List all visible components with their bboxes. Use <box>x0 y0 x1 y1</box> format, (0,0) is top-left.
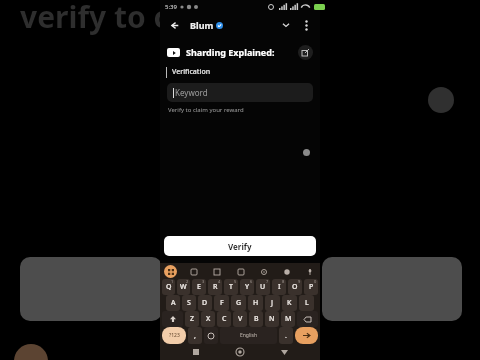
button[interactable]: Sharding Explained: <box>167 41 313 63</box>
staticText: 6 <box>250 279 253 284</box>
staticText: S <box>187 298 191 308</box>
button[interactable]: Y <box>240 279 254 295</box>
button[interactable]: Expand <box>278 17 294 33</box>
staticText: K <box>287 298 292 308</box>
staticText: J <box>271 298 274 308</box>
button[interactable]: X <box>201 311 215 327</box>
button[interactable]: S <box>182 295 196 311</box>
button[interactable]: Q <box>162 279 175 295</box>
button[interactable]: Z <box>185 311 199 327</box>
button[interactable]: Keyboard menu <box>164 265 177 278</box>
staticText: P <box>309 282 314 292</box>
button[interactable]: Home <box>232 344 248 360</box>
staticText: G <box>236 298 242 308</box>
staticText: X <box>206 314 211 324</box>
staticText: L <box>305 298 309 308</box>
staticText: R <box>213 282 218 292</box>
button[interactable]: O <box>288 279 302 295</box>
button[interactable]: Enter <box>295 327 318 344</box>
staticText: Blum <box>190 19 214 31</box>
button[interactable]: Stickers <box>234 265 247 278</box>
staticText: . <box>285 331 287 341</box>
button[interactable]: E <box>192 279 206 295</box>
staticText: , <box>194 331 196 341</box>
staticText: I <box>278 282 281 292</box>
button[interactable]: Verify <box>164 236 316 256</box>
staticText: 4 <box>218 279 221 284</box>
button[interactable]: Shift <box>162 311 183 327</box>
button[interactable]: Backspace <box>297 311 318 327</box>
button[interactable]: ?123 <box>162 327 186 344</box>
button[interactable]: Settings <box>257 265 270 278</box>
button[interactable]: , <box>188 327 202 344</box>
staticText: Q <box>166 282 172 292</box>
button[interactable]: T <box>224 279 238 295</box>
staticText: Z <box>190 314 195 324</box>
staticText: B <box>254 314 259 324</box>
staticText: verify to claim you <box>20 0 298 37</box>
button[interactable]: Theme <box>280 265 293 278</box>
button[interactable]: Back <box>166 17 182 33</box>
button[interactable]: W <box>177 279 190 295</box>
button[interactable]: Voice input <box>303 265 316 278</box>
button[interactable]: V <box>233 311 247 327</box>
button[interactable]: F <box>214 295 229 311</box>
button[interactable]: Keyword <box>167 83 313 102</box>
button[interactable]: J <box>265 295 280 311</box>
button[interactable]: Back <box>276 344 292 360</box>
staticText: Keyword <box>175 87 208 98</box>
staticText: 9 <box>298 279 301 284</box>
staticText: Sharding Explained: <box>186 46 275 58</box>
button[interactable]: English <box>220 327 277 344</box>
staticText: 7 <box>266 279 269 284</box>
staticText: H <box>253 298 259 308</box>
staticText: W <box>180 282 187 292</box>
staticText: 3 <box>202 279 205 284</box>
button[interactable]: D <box>198 295 212 311</box>
staticText: T <box>229 282 233 292</box>
staticText: C <box>222 314 227 324</box>
staticText: 1 <box>171 279 174 284</box>
staticText: English <box>240 332 258 339</box>
button[interactable]: Open link <box>298 45 313 60</box>
staticText: Verification <box>172 67 211 77</box>
button[interactable]: A <box>166 295 180 311</box>
button[interactable]: H <box>248 295 263 311</box>
button[interactable]: L <box>299 295 314 311</box>
staticText: E <box>197 282 201 292</box>
button[interactable]: K <box>282 295 297 311</box>
button[interactable]: Recents <box>188 344 204 360</box>
button[interactable]: I <box>272 279 286 295</box>
staticText: ?123 <box>169 332 180 339</box>
button[interactable]: Emoji <box>204 327 218 344</box>
staticText: Verify <box>228 241 252 252</box>
staticText: M <box>285 314 292 324</box>
staticText: 0 <box>314 279 317 284</box>
button[interactable]: P <box>304 279 318 295</box>
staticText: 2 <box>186 279 189 284</box>
button[interactable]: More options <box>298 17 314 33</box>
staticText: U <box>260 282 266 292</box>
button[interactable]: Clipboard <box>187 265 200 278</box>
staticText: D <box>202 298 208 308</box>
button[interactable]: . <box>279 327 293 344</box>
button[interactable]: R <box>208 279 222 295</box>
staticText: V <box>238 314 243 324</box>
staticText: F <box>220 298 224 308</box>
button[interactable]: N <box>265 311 279 327</box>
staticText: A <box>171 298 176 308</box>
staticText: Y <box>245 282 250 292</box>
button[interactable]: G <box>231 295 246 311</box>
button[interactable]: U <box>256 279 270 295</box>
staticText: Verify to claim your reward <box>168 106 244 114</box>
staticText: 8 <box>282 279 285 284</box>
staticText: O <box>292 282 298 292</box>
button[interactable]: GIF <box>210 265 223 278</box>
button[interactable]: B <box>249 311 263 327</box>
button[interactable]: M <box>281 311 295 327</box>
staticText: 5 <box>234 279 237 284</box>
staticText: N <box>269 314 275 324</box>
staticText: 5:39 <box>165 3 177 11</box>
button[interactable]: C <box>217 311 231 327</box>
